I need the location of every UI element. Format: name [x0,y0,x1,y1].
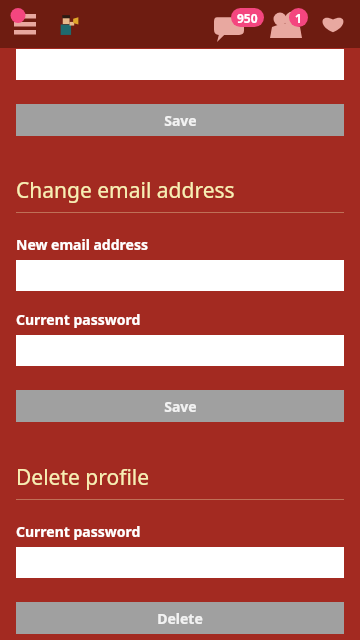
button[interactable]: Save [16,104,344,136]
button[interactable]: Save [16,390,344,422]
button[interactable]: Delete [16,602,344,634]
staticText: 950 [237,10,258,26]
staticText: Current password [16,310,141,329]
staticText: Save [164,397,197,416]
staticText: 1 [295,10,302,26]
button[interactable]: Profile [56,11,82,37]
button[interactable]: Likes [316,7,350,41]
button[interactable]: Messages [212,7,264,41]
staticText: Delete [157,609,203,628]
staticText: Change email address [16,176,235,205]
staticText: Current password [16,522,141,541]
staticText: Delete profile [16,463,150,492]
staticText: New email address [16,235,148,254]
button[interactable]: Menu [8,4,48,44]
staticText: Save [164,111,197,130]
button[interactable]: Friends [266,7,310,41]
